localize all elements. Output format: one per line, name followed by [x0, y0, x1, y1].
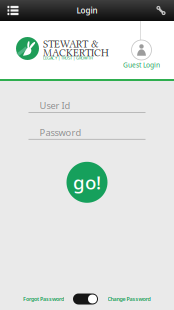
- button[interactable]: Change Password: [105, 293, 153, 305]
- staticText: Change Password: [107, 295, 150, 303]
- staticText: Forgot Password: [23, 295, 64, 303]
- button[interactable]: Toggle password mode: [73, 293, 98, 304]
- button[interactable]: Guest Login: [118, 40, 165, 69]
- staticText: STEWART &: [43, 38, 99, 50]
- staticText: Password: [39, 126, 81, 139]
- staticText: Login: [76, 5, 97, 16]
- staticText: LEGACY | TRUST | GROWTH: [43, 55, 93, 61]
- staticText: MACKERTICH: [43, 47, 109, 59]
- button[interactable]: Call: [148, 0, 174, 21]
- button[interactable]: Forgot Password: [21, 293, 66, 305]
- button[interactable]: go!: [66, 162, 107, 203]
- staticText: User Id: [39, 99, 70, 112]
- button[interactable]: Menu: [0, 0, 26, 21]
- staticText: go!: [73, 170, 101, 195]
- staticText: Guest Login: [123, 60, 160, 69]
